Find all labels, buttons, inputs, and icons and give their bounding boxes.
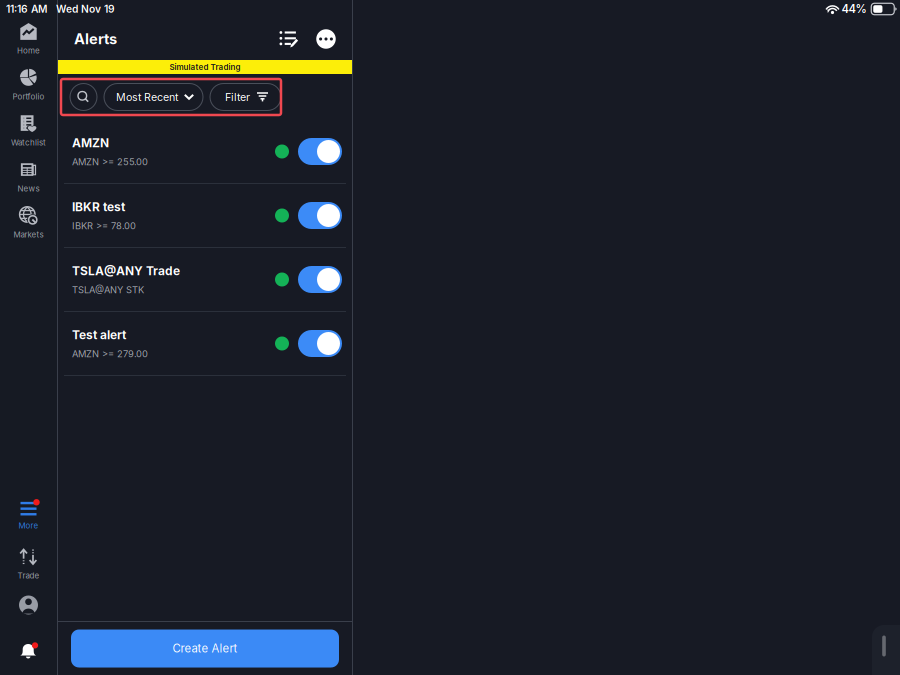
button[interactable]: IBKR test <box>58 184 352 247</box>
button[interactable]: Filter <box>210 83 281 110</box>
button[interactable]: Home <box>0 20 57 58</box>
button[interactable]: TSLA@ANY Trade <box>58 248 352 311</box>
button[interactable]: Trade <box>0 545 57 583</box>
button[interactable]: Test alert <box>58 312 352 375</box>
staticText: Most Recent <box>116 90 178 103</box>
staticText: 44% <box>841 2 866 16</box>
button[interactable]: Toggle alert IBKR test <box>298 202 342 229</box>
button[interactable]: Edit alerts <box>276 26 302 52</box>
button[interactable]: Notifications <box>0 639 57 663</box>
staticText: AMZN <box>72 136 109 150</box>
staticText: TSLA@ANY Trade <box>72 264 180 278</box>
staticText: AMZN >= 255.00 <box>72 156 148 167</box>
button[interactable]: News <box>0 158 57 196</box>
button[interactable]: Toggle alert Test alert <box>298 330 342 357</box>
button[interactable]: More <box>0 497 57 535</box>
button[interactable]: Search <box>70 83 97 110</box>
staticText: Wed Nov 19 <box>56 3 115 15</box>
staticText: Simulated Trading <box>169 62 240 72</box>
staticText: Create Alert <box>172 642 237 655</box>
staticText: Markets <box>13 230 43 239</box>
staticText: IBKR >= 78.00 <box>72 220 136 231</box>
staticText: Home <box>17 46 40 55</box>
staticText: News <box>17 184 39 193</box>
button[interactable]: Toggle alert AMZN <box>298 138 342 165</box>
button[interactable]: Most Recent <box>104 83 203 110</box>
button[interactable]: Portfolio <box>0 66 57 104</box>
button[interactable]: AMZN <box>58 120 352 183</box>
staticText: 11:16 AM <box>6 3 47 15</box>
button[interactable]: Markets <box>0 204 57 242</box>
staticText: Alerts <box>74 30 117 48</box>
staticText: TSLA@ANY STK <box>72 284 144 295</box>
staticText: AMZN >= 279.00 <box>72 348 148 359</box>
staticText: Trade <box>17 571 39 580</box>
button[interactable]: Toggle alert TSLA@ANY Trade <box>298 266 342 293</box>
staticText: More <box>18 521 38 530</box>
staticText: IBKR test <box>72 200 125 214</box>
staticText: Test alert <box>72 328 126 342</box>
button[interactable]: Account <box>0 593 57 617</box>
button[interactable]: More options <box>313 26 339 52</box>
button[interactable]: Watchlist <box>0 112 57 150</box>
button[interactable]: Create Alert <box>71 629 339 667</box>
staticText: Watchlist <box>11 138 46 147</box>
staticText: Portfolio <box>12 92 44 101</box>
staticText: Filter <box>225 90 250 103</box>
